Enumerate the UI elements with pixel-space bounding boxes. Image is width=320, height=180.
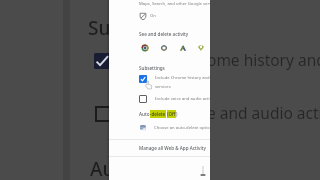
staticText: Au <box>90 156 115 180</box>
button[interactable]: On <box>139 12 156 20</box>
button[interactable]: Choose an auto-delete option <box>139 122 210 133</box>
staticText: -delete <box>150 111 166 117</box>
button[interactable]: Google Photos <box>160 44 168 52</box>
staticText: Subsettings <box>139 65 165 71</box>
staticText: Choose an auto-delete option <box>154 125 210 131</box>
staticText: e and audio activit <box>207 102 320 123</box>
button[interactable]: Google Drive <box>179 44 187 52</box>
staticText: Auto <box>139 111 150 117</box>
staticText: Sub <box>88 15 123 41</box>
staticText: ome history and a <box>207 49 320 70</box>
staticText: Include Chrome history and activity <box>155 75 210 81</box>
staticText: services <box>155 84 171 90</box>
staticText: Manage all Web & App Activity <box>139 145 206 151</box>
staticText: Include voice and audio activity <box>155 96 210 102</box>
button[interactable]: Manage all Web & App Activity <box>109 140 210 156</box>
button[interactable]: Include voice and audio activity <box>139 94 210 104</box>
button[interactable]: Google Maps <box>197 44 205 52</box>
staticText: Maps, Search, and other Google services <box>139 1 210 7</box>
button[interactable]: Include Chrome history and activity <box>139 74 210 91</box>
staticText: ) <box>176 111 178 117</box>
staticText: (Off <box>167 111 176 117</box>
button[interactable]: Chrome <box>141 44 149 52</box>
staticText: On <box>150 13 156 19</box>
staticText: See and delete activity <box>139 31 189 37</box>
